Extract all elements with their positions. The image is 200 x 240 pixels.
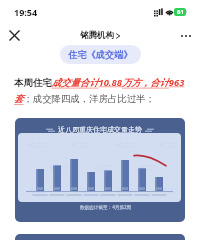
staticText: 铭腾机构 xyxy=(80,30,114,41)
button[interactable]: 近八周重庆住宅成交量走势 xyxy=(15,118,185,222)
staticText: 近八周重庆住宅成交量走势 xyxy=(58,125,142,134)
staticText: 数据统计截至：4月第2周 xyxy=(80,204,132,210)
button[interactable]: 住宅《成交端》 xyxy=(60,45,141,64)
staticText: 19:54 xyxy=(14,6,38,18)
button[interactable]: 铭腾机构 xyxy=(76,28,124,43)
staticText: 本周住宅成交量合计10.88万方，合计963套；成交降四成，洋房占比过半； xyxy=(14,76,187,105)
staticText: 住宅《成交端》 xyxy=(68,49,133,61)
button[interactable]: More options xyxy=(177,27,194,44)
staticText: 61 xyxy=(177,8,184,16)
button[interactable]: Close xyxy=(6,27,23,44)
